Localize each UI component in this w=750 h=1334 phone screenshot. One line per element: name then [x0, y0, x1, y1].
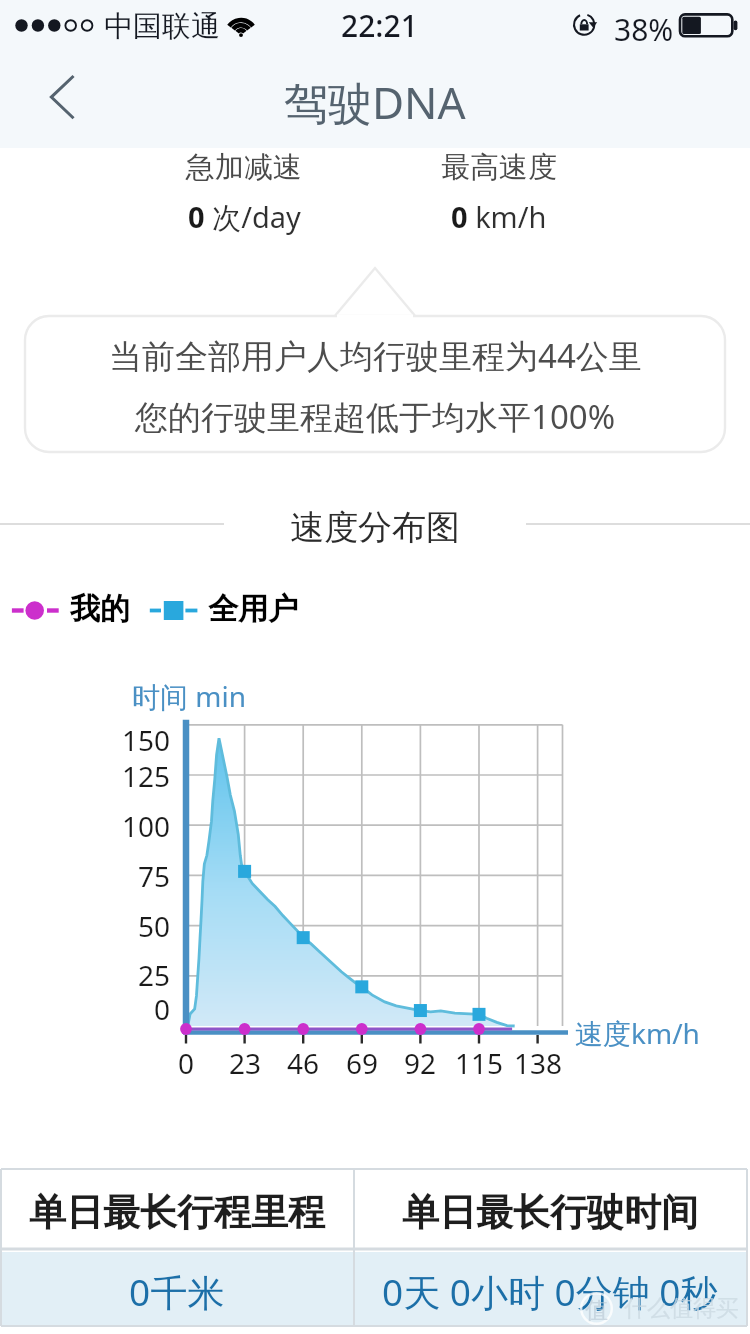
staticText: 速度分布图: [290, 506, 460, 549]
staticText: 92: [404, 1044, 437, 1082]
staticText: 50: [138, 907, 171, 945]
staticText: 125: [122, 757, 171, 795]
staticText: 150: [122, 721, 171, 759]
staticText: 当前全部用户人均行驶里程为44公里: [109, 333, 642, 378]
staticText: 0 次/day: [188, 197, 301, 237]
staticText: 您的行驶里程超低于均水平100%: [135, 394, 616, 439]
staticText: 0: [154, 990, 171, 1028]
staticText: 25: [138, 956, 171, 994]
staticText: 38%: [614, 9, 674, 50]
staticText: 46: [287, 1044, 320, 1082]
staticText: 单日最长行程里程: [29, 1189, 325, 1236]
staticText: 急加减速: [186, 149, 302, 186]
staticText: 值: [585, 1296, 608, 1325]
button[interactable]: Back: [18, 55, 108, 148]
staticText: 22:21: [341, 5, 418, 46]
staticText: 0千米: [129, 1266, 225, 1317]
staticText: 0: [178, 1044, 195, 1082]
staticText: 115: [455, 1044, 504, 1082]
staticText: 什么值得买: [624, 1294, 739, 1323]
staticText: 驾驶DNA: [284, 72, 466, 132]
staticText: 我的: [70, 590, 130, 628]
staticText: 速度km/h: [575, 1014, 700, 1052]
staticText: 全用户: [208, 590, 298, 628]
staticText: 138: [514, 1044, 563, 1082]
staticText: 75: [138, 857, 171, 895]
staticText: 中国联通: [104, 8, 220, 45]
staticText: 最高速度: [441, 149, 557, 186]
staticText: 时间 min: [132, 677, 246, 715]
staticText: 0天 0小时 0分钟 0秒: [382, 1266, 718, 1317]
staticText: 单日最长行驶时间: [402, 1189, 698, 1236]
staticText: 69: [346, 1044, 379, 1082]
staticText: 100: [122, 807, 171, 845]
staticText: 0 km/h: [451, 197, 547, 236]
staticText: 23: [229, 1044, 262, 1082]
